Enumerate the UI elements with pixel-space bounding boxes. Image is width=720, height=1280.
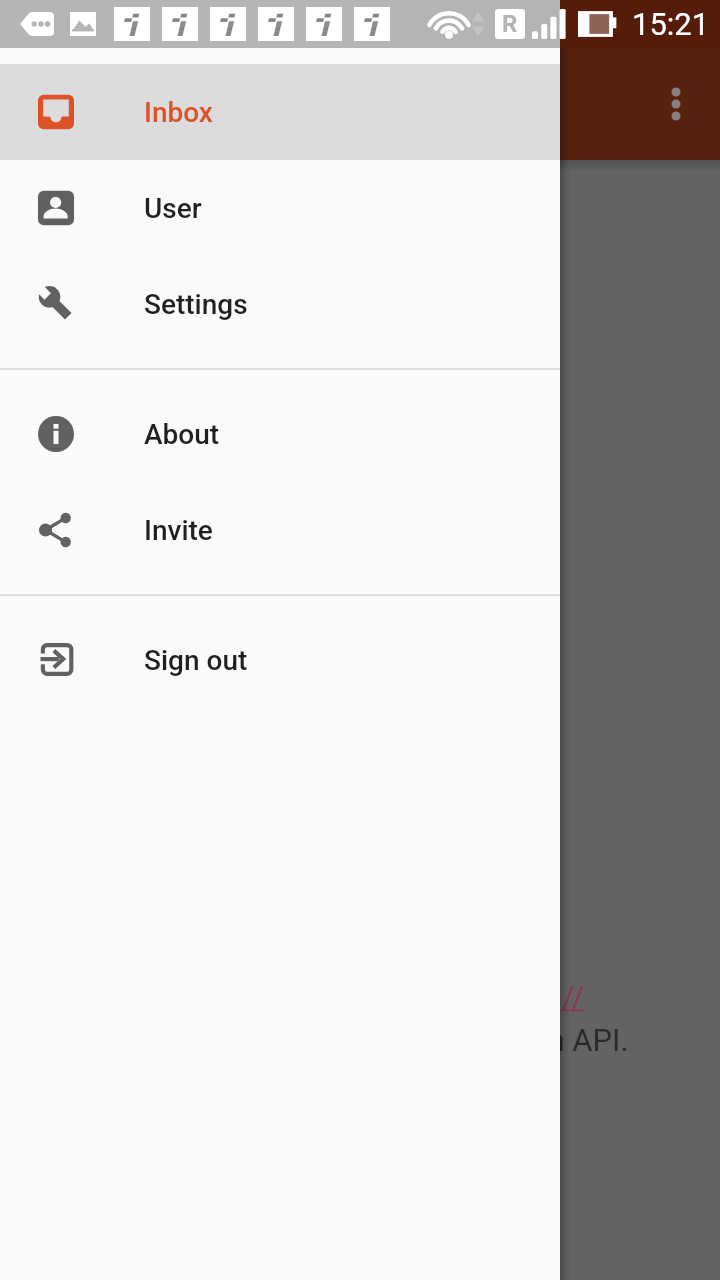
button[interactable]: About xyxy=(0,386,560,482)
staticText: About xyxy=(144,418,220,451)
staticText: https://jsonplaceholder.typicode.com// xyxy=(32,978,585,1016)
staticText: R xyxy=(502,10,518,38)
staticText: 15:21 xyxy=(632,6,710,42)
staticText: User xyxy=(144,192,202,225)
staticText: This content was fetched from an API. xyxy=(102,1022,629,1058)
staticText: Sign out xyxy=(144,644,248,677)
staticText: Settings xyxy=(144,288,248,321)
button[interactable]: Invite xyxy=(0,482,560,578)
button[interactable]: Settings xyxy=(0,256,560,352)
button[interactable]: More options xyxy=(652,72,700,120)
staticText: Inbox xyxy=(144,96,213,129)
button[interactable]: Sign out xyxy=(0,612,560,708)
staticText: Invite xyxy=(144,514,213,547)
button[interactable]: User xyxy=(0,160,560,256)
button[interactable]: Inbox xyxy=(0,64,560,160)
